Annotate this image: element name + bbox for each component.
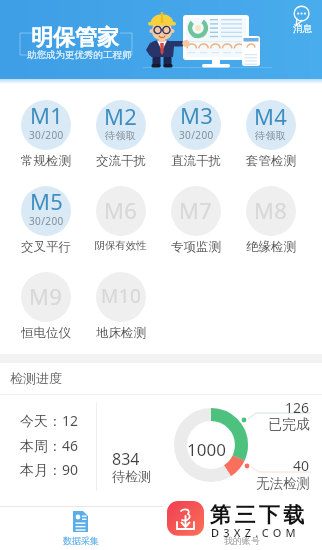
staticText: 助您成为更优秀的工程师 xyxy=(27,49,132,61)
staticText: 40 xyxy=(293,456,310,475)
staticText: M7 xyxy=(179,195,213,225)
staticText: M3 xyxy=(180,100,214,130)
staticText: 30/200 xyxy=(29,214,64,228)
staticText: 绝缘检测 xyxy=(246,239,296,255)
staticText: 已完成 xyxy=(268,416,310,434)
staticText: 专项监测 xyxy=(171,239,221,255)
staticText: 套管检测 xyxy=(246,153,296,169)
button[interactable]: M9 xyxy=(8,272,83,341)
button[interactable]: M7 xyxy=(158,186,233,255)
staticText: 126 xyxy=(285,398,310,417)
staticText: 本月：90 xyxy=(20,460,79,479)
staticText: 1000 xyxy=(187,438,226,461)
staticText: M8 xyxy=(254,195,288,225)
staticText: M4 xyxy=(254,101,288,131)
staticText: 30/200 xyxy=(179,128,214,142)
staticText: 待检测 xyxy=(112,468,151,484)
staticText: M1 xyxy=(30,100,64,130)
button[interactable]: M4 xyxy=(233,100,308,169)
staticText: M5 xyxy=(30,186,64,216)
button[interactable]: M8 xyxy=(233,186,308,255)
button[interactable]: M1 xyxy=(8,100,83,169)
button[interactable]: 我的账号 xyxy=(161,507,322,550)
staticText: 阴保有效性 xyxy=(94,239,147,252)
staticText: 恒电位仪 xyxy=(21,325,71,341)
button[interactable]: M10 xyxy=(83,272,158,341)
button[interactable]: M6 xyxy=(83,186,158,252)
staticText: 待领取 xyxy=(255,129,287,142)
staticText: 我的账号 xyxy=(224,535,260,546)
staticText: 消息 xyxy=(293,23,312,35)
button[interactable]: M3 xyxy=(158,100,233,169)
staticText: M10 xyxy=(101,283,142,309)
staticText: D3XZ.COM xyxy=(211,525,300,540)
staticText: M9 xyxy=(29,281,63,311)
staticText: M2 xyxy=(104,101,138,131)
staticText: 检测进度 xyxy=(10,370,62,386)
staticText: M6 xyxy=(104,195,138,225)
staticText: 待领取 xyxy=(105,129,137,142)
staticText: 数据采集 xyxy=(63,535,99,546)
staticText: 834 xyxy=(112,448,140,470)
staticText: 无法检测 xyxy=(256,475,310,492)
button[interactable]: 数据采集 xyxy=(0,507,161,550)
staticText: 第三下载 xyxy=(210,502,308,528)
staticText: 交叉平行 xyxy=(21,239,71,255)
button[interactable]: M5 xyxy=(8,186,83,255)
staticText: 明保管家 xyxy=(31,24,119,52)
staticText: 30/200 xyxy=(29,128,64,142)
staticText: 交流干扰 xyxy=(96,153,146,169)
staticText: 今天：12 xyxy=(20,411,79,430)
staticText: 常规检测 xyxy=(21,153,71,169)
button[interactable]: M2 xyxy=(83,100,158,169)
staticText: 地床检测 xyxy=(96,325,146,341)
staticText: 直流干扰 xyxy=(171,153,221,169)
button[interactable]: 消息 xyxy=(282,0,322,35)
staticText: 本周：46 xyxy=(20,436,79,455)
